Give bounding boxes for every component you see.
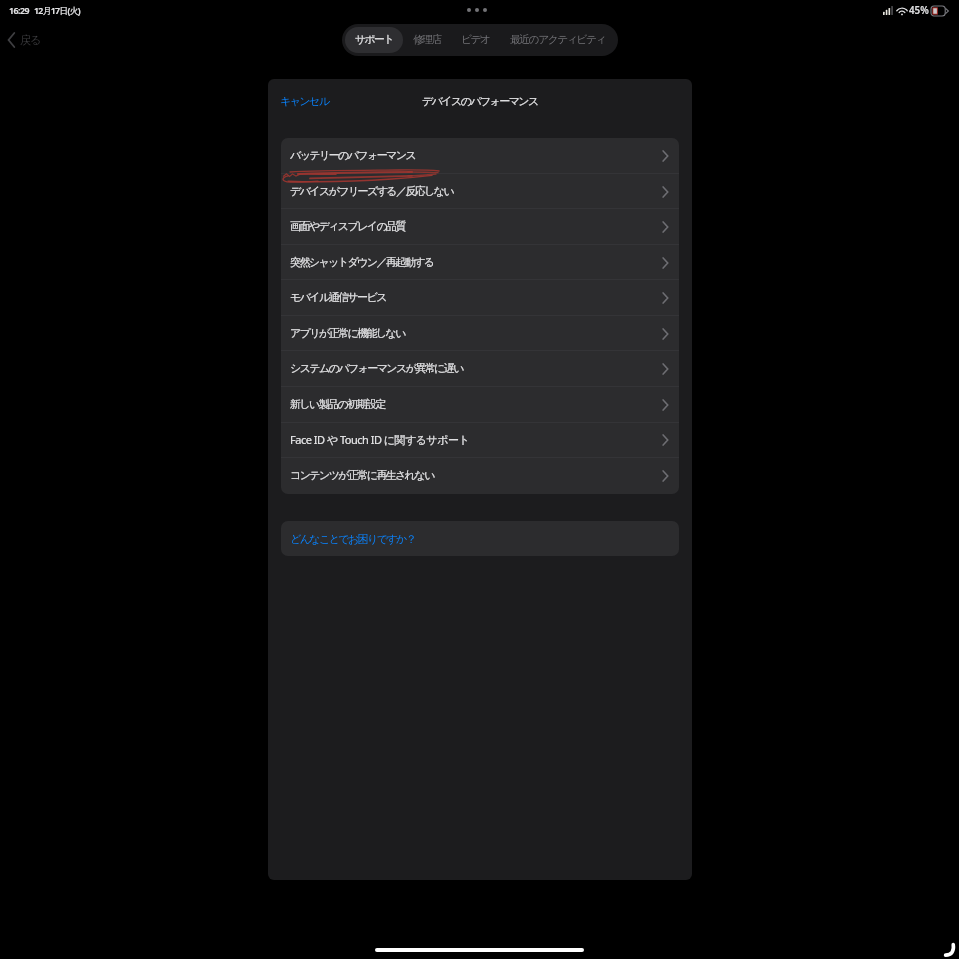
- staticText: 戻る: [20, 33, 41, 47]
- staticText: 突然シャットダウン／再起動する: [290, 255, 434, 269]
- other: 開く: [662, 150, 669, 162]
- staticText: 最近のアクティビティ: [510, 33, 605, 47]
- button[interactable]: サポート: [345, 27, 403, 53]
- staticText: デバイスのパフォーマンス: [422, 94, 538, 108]
- other: 開く: [662, 434, 669, 446]
- staticText: 画面やディスプレイの品質: [290, 219, 405, 233]
- other: 開く: [662, 328, 669, 340]
- staticText: 45%: [909, 4, 929, 17]
- staticText: キャンセル: [280, 94, 329, 108]
- other: 開く: [662, 399, 669, 411]
- staticText: システムのパフォーマンスが異常に遅い: [290, 361, 463, 375]
- staticText: 12月17日(火): [34, 5, 80, 17]
- staticText: デバイスがフリーズする／反応しない: [290, 184, 454, 198]
- other: 開く: [662, 257, 669, 269]
- button[interactable]: デバイスがフリーズする／反応しない: [281, 174, 679, 210]
- button[interactable]: 新しい製品の初期設定: [281, 387, 679, 423]
- button[interactable]: どんなことでお困りですか？: [281, 521, 679, 556]
- other: 開く: [662, 363, 669, 375]
- other: 開く: [662, 292, 669, 304]
- button[interactable]: 修理店: [403, 27, 451, 53]
- staticText: 16:29: [9, 5, 30, 17]
- staticText: サポート: [355, 33, 393, 47]
- button[interactable]: 最近のアクティビティ: [500, 27, 615, 53]
- button[interactable]: システムのパフォーマンスが異常に遅い: [281, 351, 679, 387]
- staticText: どんなことでお困りですか？: [290, 532, 416, 546]
- button[interactable]: コンテンツが正常に再生されない: [281, 458, 679, 494]
- staticText: バッテリーのパフォーマンス: [290, 148, 416, 162]
- other: 開く: [662, 470, 669, 482]
- button[interactable]: 画面やディスプレイの品質: [281, 209, 679, 245]
- button[interactable]: モバイル通信サービス: [281, 280, 679, 316]
- button[interactable]: 突然シャットダウン／再起動する: [281, 245, 679, 281]
- staticText: モバイル通信サービス: [290, 290, 386, 304]
- other: 通話: [935, 935, 959, 959]
- button[interactable]: 戻る: [2, 28, 47, 52]
- button[interactable]: バッテリーのパフォーマンス: [281, 138, 679, 174]
- button[interactable]: アプリが正常に機能しない: [281, 316, 679, 352]
- staticText: 修理店: [413, 33, 441, 47]
- button[interactable]: ビデオ: [451, 27, 500, 53]
- button[interactable]: Face ID や Touch ID に関するサポート: [281, 422, 679, 458]
- button[interactable]: キャンセル: [274, 89, 335, 113]
- staticText: コンテンツが正常に再生されない: [290, 468, 434, 482]
- staticText: Face ID や Touch ID に関するサポート: [290, 432, 470, 447]
- other: 開く: [662, 186, 669, 198]
- staticText: 新しい製品の初期設定: [290, 397, 385, 411]
- other: 開く: [662, 221, 669, 233]
- staticText: ビデオ: [461, 33, 490, 47]
- staticText: アプリが正常に機能しない: [290, 326, 405, 340]
